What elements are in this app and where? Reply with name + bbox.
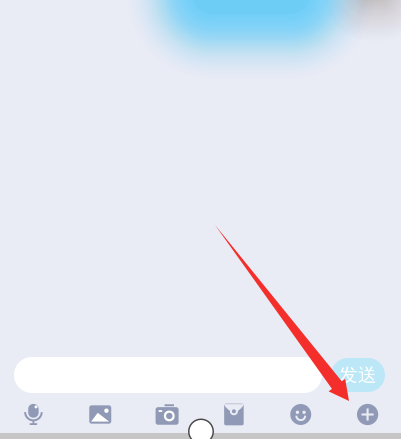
button[interactable]: 发送: [331, 358, 385, 392]
button[interactable]: Camera: [134, 398, 200, 431]
button[interactable]: Voice message: [0, 398, 67, 431]
button[interactable]: Emoji: [267, 398, 334, 431]
button[interactable]: Message: [14, 357, 322, 393]
button[interactable]: Photos: [67, 398, 134, 431]
staticText: 发送: [339, 363, 377, 386]
button[interactable]: More options: [334, 398, 401, 431]
button[interactable]: Red packet: [200, 398, 267, 431]
